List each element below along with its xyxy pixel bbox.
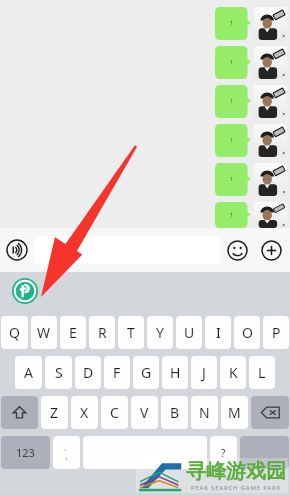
staticText: Z: [50, 403, 59, 422]
staticText: B: [170, 403, 180, 422]
button[interactable]: Shift: [1, 396, 38, 429]
button[interactable]: L: [249, 356, 275, 389]
staticText: X: [80, 403, 89, 422]
staticText: H: [170, 363, 181, 382]
staticText: PEAK SEARCH GAME PARK: [191, 484, 282, 492]
button[interactable]: W: [31, 316, 57, 349]
staticText: ?: [221, 446, 226, 460]
button[interactable]: N: [191, 396, 218, 429]
staticText: N: [199, 403, 210, 422]
button[interactable]: Backspace: [251, 396, 289, 429]
button[interactable]: Input method: [12, 278, 38, 304]
staticText: C: [110, 403, 119, 422]
staticText: P: [272, 323, 281, 342]
button[interactable]: T: [118, 316, 144, 349]
staticText: 1: [230, 176, 233, 183]
button[interactable]: Enter: [240, 436, 289, 469]
button[interactable]: 1: [0, 44, 287, 79]
staticText: 1: [230, 20, 233, 27]
button[interactable]: U: [176, 316, 202, 349]
button[interactable]: G: [133, 356, 159, 389]
staticText: Y: [156, 323, 164, 342]
button[interactable]: V: [131, 396, 158, 429]
staticText: D: [83, 363, 94, 382]
button[interactable]: S: [45, 356, 72, 389]
staticText: J: [202, 363, 206, 382]
button[interactable]: H: [162, 356, 188, 389]
button[interactable]: A: [15, 356, 42, 389]
button[interactable]: Space: [83, 436, 207, 469]
staticText: V: [140, 403, 149, 422]
staticText: L: [258, 363, 266, 382]
staticText: ，: [63, 452, 70, 461]
staticText: W: [37, 323, 51, 342]
staticText: M: [228, 403, 241, 422]
button[interactable]: F: [104, 356, 130, 389]
button[interactable]: X: [71, 396, 98, 429]
staticText: G: [141, 363, 152, 382]
staticText: 1: [230, 212, 233, 219]
button[interactable]: [254, 163, 287, 196]
button[interactable]: E: [60, 316, 86, 349]
button[interactable]: M: [221, 396, 248, 429]
button[interactable]: Voice input: [0, 233, 34, 267]
staticText: F: [113, 363, 121, 382]
staticText: 。: [64, 444, 70, 452]
button[interactable]: 1: [0, 161, 287, 196]
staticText: I: [216, 323, 221, 342]
button[interactable]: O: [234, 316, 260, 349]
button[interactable]: I: [205, 316, 231, 349]
staticText: 1: [230, 59, 233, 66]
staticText: 123: [16, 445, 35, 460]
staticText: R: [98, 323, 107, 342]
button[interactable]: Emoji: [220, 233, 254, 267]
button[interactable]: [34, 236, 220, 264]
button[interactable]: [254, 46, 287, 79]
staticText: 1: [230, 137, 233, 144]
staticText: E: [69, 323, 77, 342]
button[interactable]: C: [101, 396, 128, 429]
button[interactable]: J: [191, 356, 217, 389]
staticText: T: [127, 323, 135, 342]
button[interactable]: Y: [147, 316, 173, 349]
button[interactable]: B: [161, 396, 188, 429]
button[interactable]: R: [89, 316, 115, 349]
button[interactable]: 123: [1, 436, 50, 469]
button[interactable]: 1: [0, 83, 287, 118]
button[interactable]: D: [75, 356, 101, 389]
button[interactable]: K: [220, 356, 246, 389]
button[interactable]: [254, 202, 287, 228]
staticText: S: [55, 363, 63, 382]
button[interactable]: Z: [41, 396, 68, 429]
button[interactable]: 1: [0, 122, 287, 157]
button[interactable]: 1: [0, 5, 287, 40]
staticText: Q: [9, 323, 20, 342]
staticText: 1: [230, 98, 233, 105]
button[interactable]: [254, 124, 287, 157]
button[interactable]: P: [263, 316, 289, 349]
button[interactable]: ?: [210, 436, 237, 469]
button[interactable]: 。: [53, 436, 80, 469]
staticText: K: [229, 363, 238, 382]
staticText: O: [242, 323, 253, 342]
button[interactable]: 1: [0, 200, 287, 228]
button[interactable]: Q: [1, 316, 28, 349]
staticText: U: [184, 323, 195, 342]
staticText: 寻峰游戏园: [186, 459, 286, 484]
staticText: A: [24, 363, 33, 382]
button[interactable]: [254, 7, 287, 40]
button[interactable]: More: [254, 233, 288, 267]
button[interactable]: [254, 85, 287, 118]
